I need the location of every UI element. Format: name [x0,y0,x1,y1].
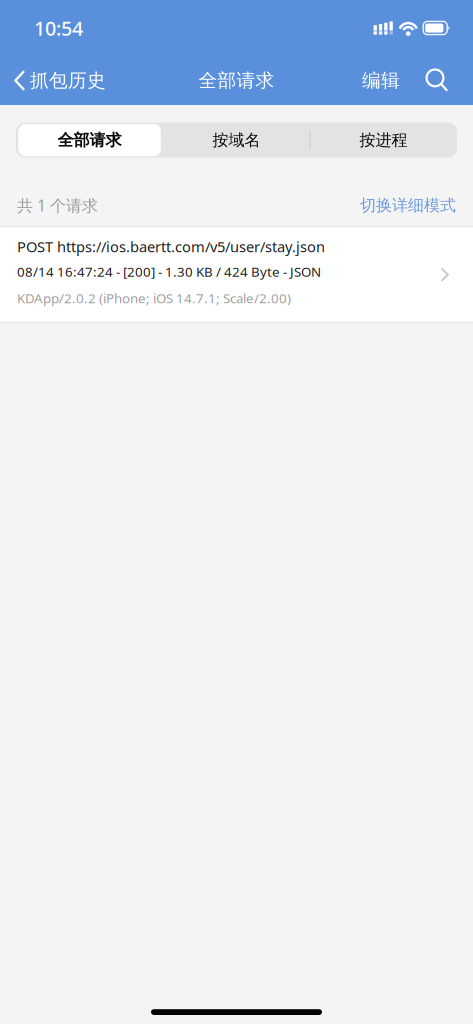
staticText: 共 1 个请求 [17,194,98,216]
button[interactable]: 切换详细模式 [360,195,456,215]
staticText: 全部请求 [57,130,121,150]
button[interactable]: 按域名 [163,123,310,158]
button[interactable]: POST https://ios.baertt.com/v5/user/stay… [0,227,473,322]
staticText: 10:54 [34,15,83,41]
staticText: 全部请求 [198,69,274,92]
staticText: 按域名 [212,130,260,150]
staticText: 08/14 16:47:24 - [200] - 1.30 KB / 424 B… [17,262,321,281]
staticText: KDApp/2.0.2 (iPhone; iOS 14.7.1; Scale/2… [17,289,291,307]
button[interactable]: Search [422,56,452,104]
button[interactable]: 抓包历史 [0,56,116,104]
button[interactable]: 按进程 [310,123,457,158]
button[interactable]: 全部请求 [16,123,163,158]
staticText: 切换详细模式 [360,195,456,215]
staticText: POST https://ios.baertt.com/v5/user/stay… [17,237,325,257]
staticText: 抓包历史 [30,69,106,92]
staticText: 编辑 [362,69,400,92]
staticText: 按进程 [359,130,407,150]
button[interactable]: 编辑 [354,56,408,104]
